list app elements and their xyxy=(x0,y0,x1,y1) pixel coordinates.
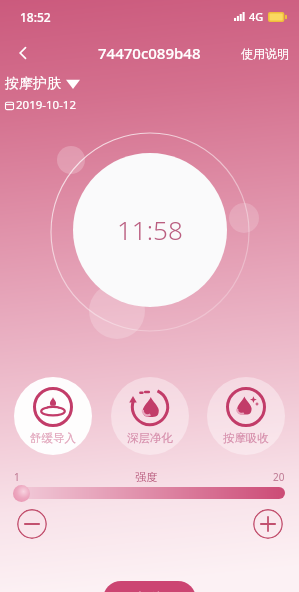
staticText: 深层净化 xyxy=(127,431,173,445)
button[interactable]: 按摩护肤 xyxy=(5,75,80,93)
button[interactable]: Back xyxy=(0,34,46,72)
staticText: 74470c089b48 xyxy=(98,43,201,63)
button[interactable]: 暂停 xyxy=(103,581,196,592)
staticText: 11:58 xyxy=(117,212,183,247)
staticText: 2019-10-12 xyxy=(16,97,77,113)
staticText: 暂停 xyxy=(136,590,164,592)
staticText: 4G xyxy=(249,9,264,24)
button[interactable]: Decrease intensity xyxy=(17,509,47,539)
button[interactable]: 深层净化 xyxy=(111,377,189,455)
staticText: 1 xyxy=(14,470,20,484)
staticText: 使用说明 xyxy=(241,46,289,61)
staticText: 强度 xyxy=(135,470,157,484)
button[interactable]: Intensity slider xyxy=(14,487,285,499)
staticText: 18:52 xyxy=(20,9,51,25)
button[interactable]: 使用说明 xyxy=(231,38,299,69)
button[interactable]: 舒缓导入 xyxy=(14,377,92,455)
staticText: 按摩吸收 xyxy=(223,431,269,445)
button[interactable]: 按摩吸收 xyxy=(207,377,285,455)
staticText: 按摩护肤 xyxy=(5,75,61,93)
staticText: 20 xyxy=(273,470,285,484)
button[interactable]: Increase intensity xyxy=(253,509,283,539)
staticText: 舒缓导入 xyxy=(30,431,76,445)
